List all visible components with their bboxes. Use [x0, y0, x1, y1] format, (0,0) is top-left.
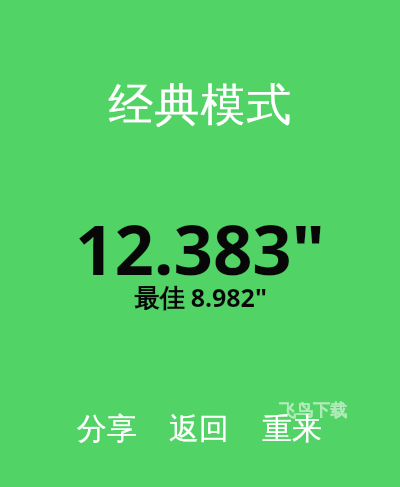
- button[interactable]: 分享: [61, 408, 153, 450]
- staticText: 分享: [77, 410, 137, 448]
- staticText: 最佳 8.982": [134, 280, 267, 314]
- button[interactable]: 重来: [245, 408, 339, 450]
- button[interactable]: 返回: [153, 408, 245, 450]
- staticText: 返回: [169, 410, 229, 448]
- staticText: 经典模式: [108, 77, 292, 134]
- staticText: 重来: [262, 410, 322, 448]
- staticText: 12.383": [75, 201, 325, 279]
- staticText: 飞鸟下载: [279, 400, 347, 420]
